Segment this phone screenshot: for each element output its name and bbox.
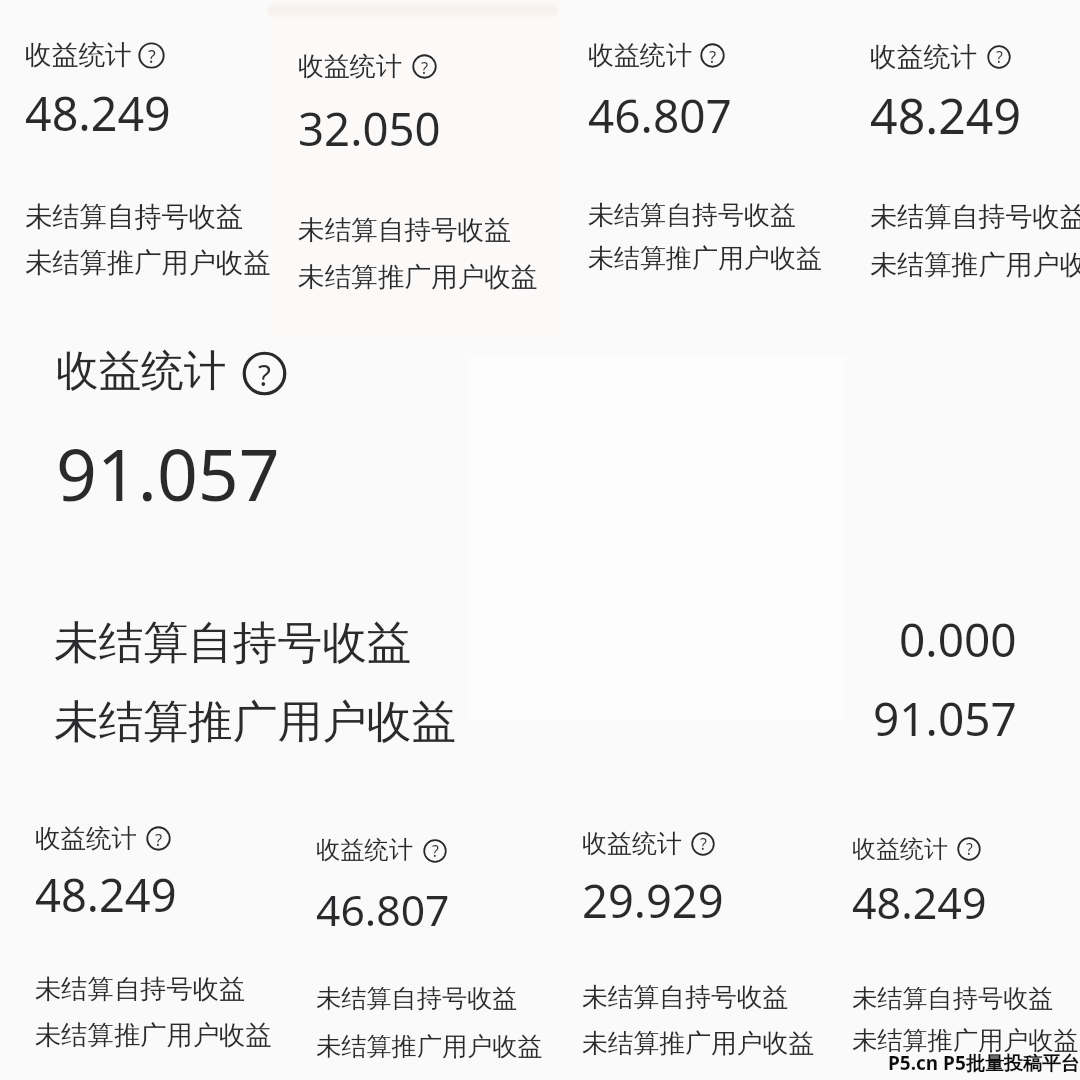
button[interactable]: 48.249: [35, 864, 177, 926]
button[interactable]: 收益统计: [588, 39, 725, 72]
button[interactable]: 48.249: [870, 82, 1022, 148]
staticText: 未结算自持号收益: [582, 981, 789, 1014]
staticText: 未结算推广用户收益: [298, 260, 538, 294]
other: Help: [691, 832, 715, 856]
staticText: 收益统计: [582, 828, 682, 859]
staticText: 未结算推广用户收益: [35, 1019, 272, 1052]
button[interactable]: 收益统计: [316, 835, 447, 866]
button[interactable]: 收益统计: [870, 40, 1011, 74]
other: Help: [412, 54, 437, 79]
staticText: 未结算自持号收益: [870, 200, 1080, 234]
staticText: 收益统计: [25, 38, 132, 72]
staticText: ?: [258, 354, 271, 394]
staticText: 未结算推广用户收益: [54, 694, 457, 750]
staticText: 未结算自持号收益: [25, 200, 244, 234]
other: Help: [138, 42, 165, 69]
button[interactable]: 收益统计: [582, 828, 715, 859]
staticText: 0.000: [899, 608, 1017, 671]
staticText: 未结算推广用户收益: [316, 1031, 543, 1063]
button[interactable]: 48.249: [25, 81, 171, 144]
staticText: 收益统计: [35, 822, 137, 854]
staticText: ?: [432, 840, 439, 862]
staticText: 未结算自持号收益: [54, 615, 412, 671]
staticText: ?: [700, 833, 707, 855]
button[interactable]: 收益统计: [852, 834, 981, 864]
staticText: 未结算自持号收益: [298, 213, 511, 247]
other: Help: [423, 839, 447, 863]
staticText: 未结算推广用户收益: [870, 248, 1080, 282]
button[interactable]: 46.807: [588, 84, 732, 147]
staticText: 未结算推广用户收益: [852, 1025, 1079, 1057]
other: Help: [242, 351, 287, 396]
staticText: 未结算自持号收益: [316, 983, 518, 1015]
staticText: 未结算自持号收益: [852, 983, 1054, 1015]
staticText: 收益统计: [852, 834, 948, 864]
other: Help: [957, 837, 981, 861]
staticText: ?: [421, 56, 429, 78]
button[interactable]: 91.057: [56, 425, 280, 522]
other: Help: [146, 826, 171, 851]
button[interactable]: 32.050: [298, 97, 441, 159]
button[interactable]: 46.807: [316, 880, 450, 938]
staticText: P5.cn P5批量投稿平台: [888, 1050, 1080, 1076]
staticText: 未结算自持号收益: [35, 973, 246, 1006]
button[interactable]: 收益统计: [25, 38, 165, 72]
other: Help: [987, 45, 1011, 69]
button[interactable]: 29.929: [582, 870, 724, 932]
staticText: 收益统计: [298, 50, 402, 83]
staticText: ?: [966, 838, 973, 860]
staticText: ?: [155, 828, 163, 850]
staticText: 收益统计: [316, 835, 414, 866]
staticText: 收益统计: [588, 39, 692, 72]
staticText: 未结算自持号收益: [588, 199, 796, 232]
staticText: ?: [148, 44, 156, 68]
button[interactable]: 收益统计: [56, 344, 287, 398]
staticText: ?: [996, 46, 1003, 68]
button[interactable]: 48.249: [852, 873, 987, 932]
staticText: 未结算推广用户收益: [25, 246, 271, 280]
staticText: 未结算推广用户收益: [582, 1027, 815, 1060]
staticText: 收益统计: [870, 40, 978, 74]
button[interactable]: 未结算自持号收益: [54, 615, 412, 671]
button[interactable]: 收益统计: [298, 50, 437, 83]
button[interactable]: 未结算推广用户收益: [54, 694, 457, 750]
staticText: 未结算推广用户收益: [588, 242, 822, 275]
staticText: ?: [709, 45, 717, 67]
button[interactable]: 收益统计: [35, 822, 171, 854]
staticText: 收益统计: [56, 344, 227, 398]
other: Help: [700, 43, 725, 68]
staticText: 91.057: [873, 687, 1017, 750]
